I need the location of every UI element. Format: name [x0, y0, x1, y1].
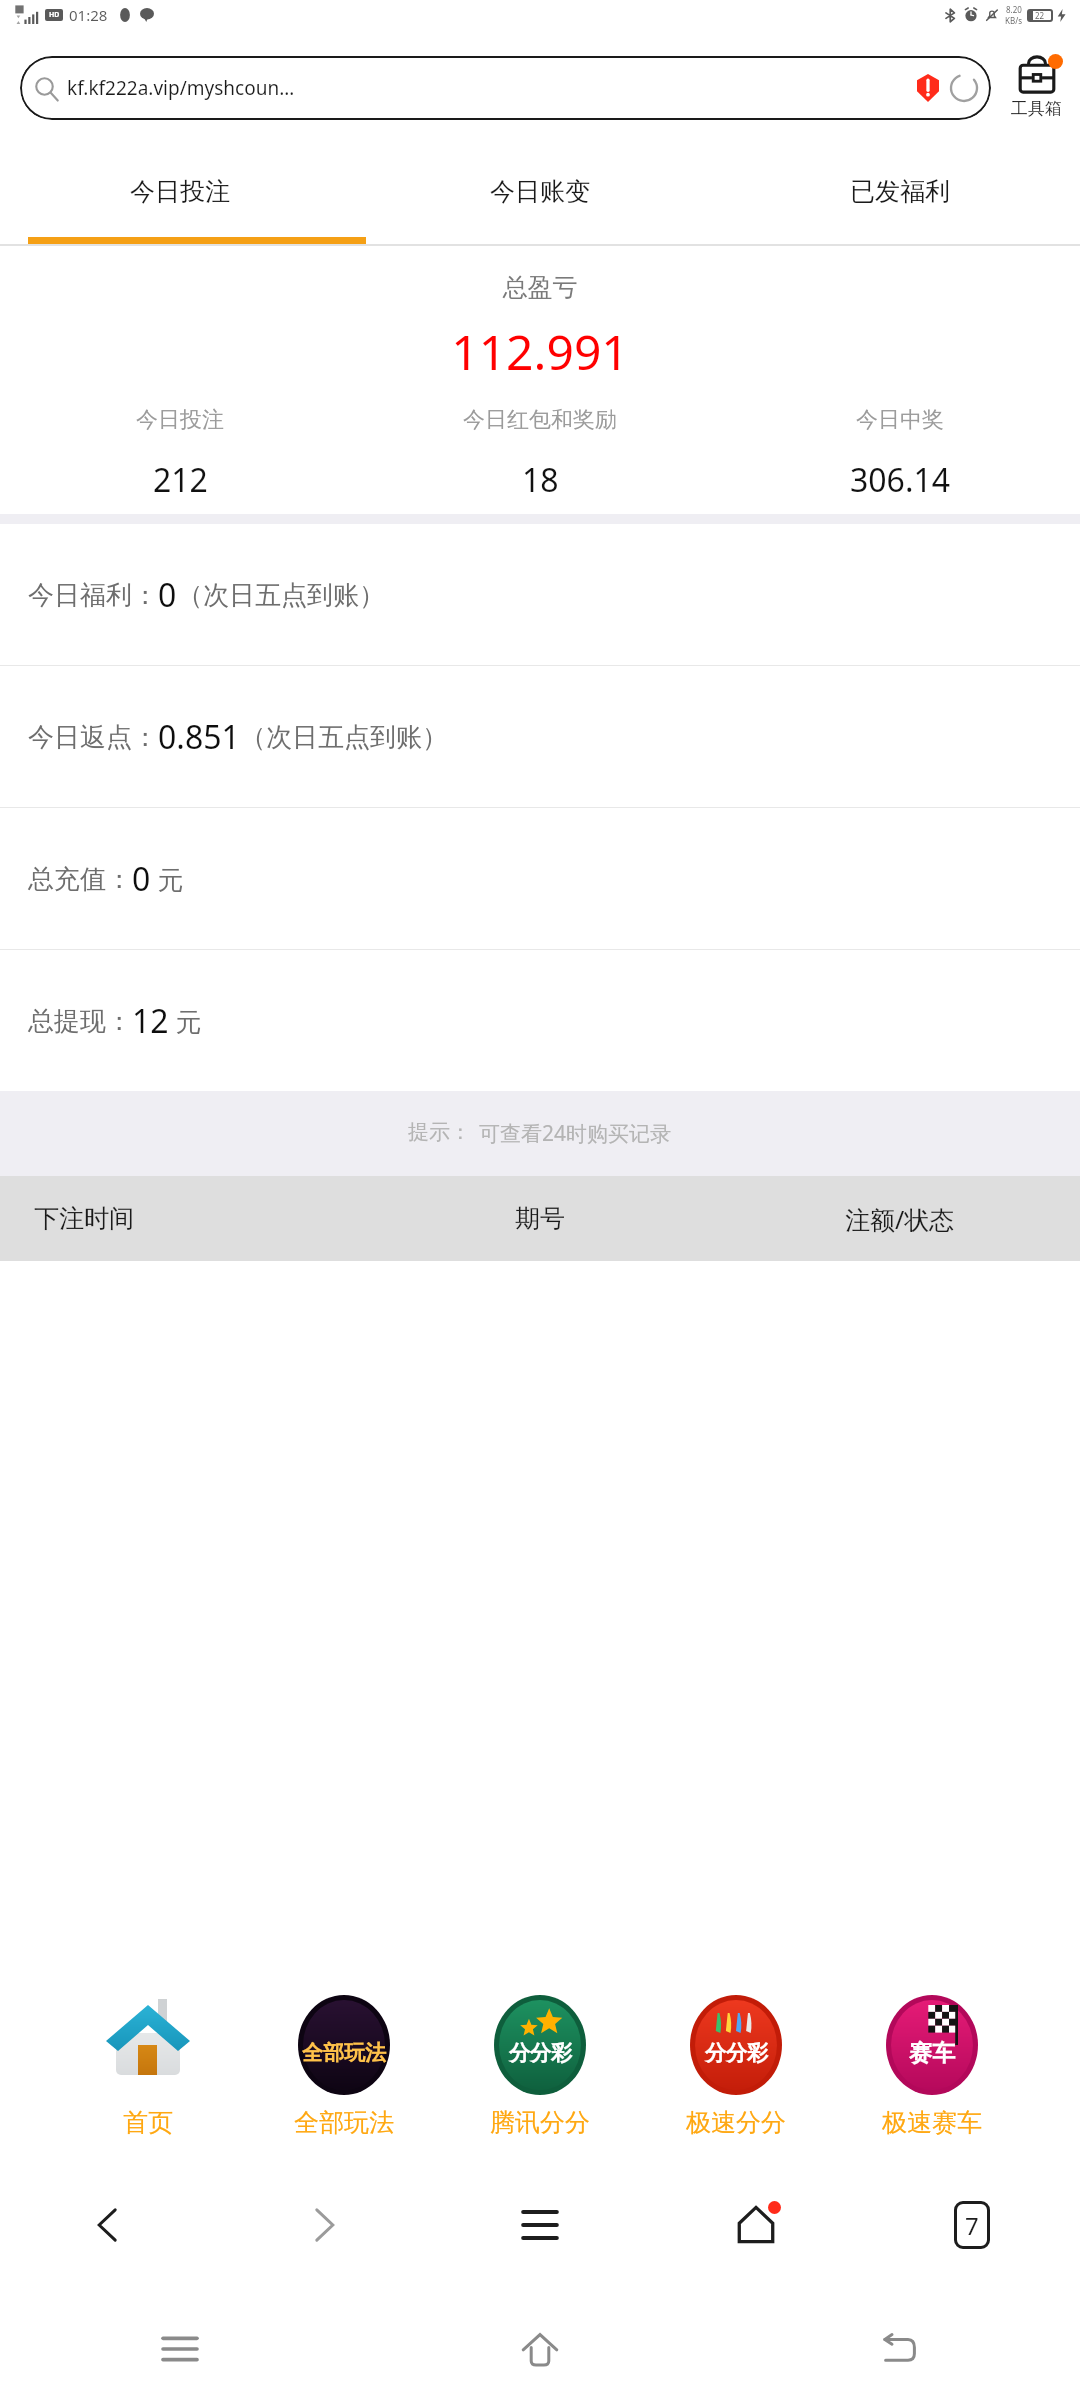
button[interactable]: 分分彩 — [678, 1991, 794, 2138]
staticText: （次日五点到账） — [240, 721, 448, 754]
staticText: 可查看24时购买记录 — [479, 1119, 672, 1148]
staticText: 分分彩 — [509, 2040, 572, 2066]
staticText: kf.kf222a.vip/myshcoun… — [67, 75, 911, 101]
staticText: 22 — [1035, 10, 1045, 21]
other: Reload — [951, 75, 977, 101]
button[interactable]: 今日福利： — [0, 524, 1080, 665]
staticText: 首页 — [123, 2107, 173, 2138]
button[interactable]: 首页 — [90, 1991, 206, 2138]
staticText: 极速赛车 — [882, 2107, 982, 2138]
staticText: 提示： — [408, 1119, 471, 1145]
staticText: 0 — [158, 573, 177, 617]
staticText: 306.14 — [850, 458, 951, 502]
staticText: 112.991 — [0, 319, 1080, 384]
staticText: 已发福利 — [850, 176, 950, 207]
staticText: 今日红包和奖励 — [463, 406, 617, 434]
button[interactable]: 今日返点： — [0, 666, 1080, 807]
other: Security warning — [917, 74, 939, 102]
staticText: 赛车 — [909, 2039, 955, 2068]
staticText: 212 — [153, 458, 208, 502]
staticText: 注额/状态 — [845, 1202, 955, 1236]
button[interactable]: Forward — [216, 2160, 432, 2290]
button[interactable]: 赛车 — [874, 1991, 990, 2138]
staticText: 全部玩法 — [294, 2107, 394, 2138]
staticText: 今日中奖 — [856, 406, 944, 434]
staticText: 18 — [522, 458, 559, 502]
button[interactable]: 今日账变 — [360, 145, 720, 237]
button[interactable]: 工具箱 — [1005, 56, 1068, 119]
button[interactable]: 今日投注 — [0, 145, 360, 237]
button[interactable]: 今日中奖 — [720, 406, 1080, 502]
staticText: 工具箱 — [1011, 98, 1062, 119]
staticText: 0 — [132, 857, 151, 901]
staticText: 总提现： — [28, 1005, 132, 1038]
staticText: 今日返点： — [28, 721, 158, 754]
staticText: 12 — [132, 999, 169, 1043]
staticText: 元 — [151, 861, 184, 897]
staticText: 全部玩法 — [302, 2040, 386, 2066]
staticText: 01:28 — [69, 5, 108, 25]
staticText: 期号 — [515, 1203, 565, 1234]
button[interactable]: Back — [720, 2290, 1080, 2408]
button[interactable]: Home — [648, 2160, 864, 2290]
staticText: 元 — [169, 1003, 202, 1039]
staticText: 下注时间 — [34, 1203, 134, 1234]
staticText: 今日福利： — [28, 579, 158, 612]
button[interactable]: Menu — [432, 2160, 648, 2290]
staticText: 今日投注 — [136, 406, 224, 434]
button[interactable]: 分分彩 — [482, 1991, 598, 2138]
staticText: 腾讯分分 — [490, 2107, 590, 2138]
staticText: 7 — [965, 2209, 979, 2242]
button[interactable]: kf.kf222a.vip/myshcoun… — [20, 56, 991, 120]
staticText: 8.20 — [1006, 4, 1022, 15]
staticText: 今日投注 — [130, 176, 230, 207]
button[interactable]: 今日红包和奖励 — [360, 406, 720, 502]
button[interactable]: 已发福利 — [720, 145, 1080, 237]
staticText: 总盈亏 — [0, 272, 1080, 303]
staticText: KB/s — [1005, 15, 1022, 26]
staticText: （次日五点到账） — [177, 579, 385, 612]
staticText: 总充值： — [28, 863, 132, 896]
button[interactable]: Recents — [0, 2290, 360, 2408]
button[interactable]: 今日投注 — [0, 406, 360, 502]
button[interactable]: 总提现： — [0, 950, 1080, 1091]
button[interactable]: Tabs — [864, 2160, 1080, 2290]
staticText: 0.851 — [158, 715, 240, 759]
staticText: HD — [49, 10, 60, 20]
staticText: 分分彩 — [705, 2040, 768, 2066]
staticText: 极速分分 — [686, 2107, 786, 2138]
staticText: 今日账变 — [490, 176, 590, 207]
button[interactable]: 全部玩法 — [286, 1991, 402, 2138]
button[interactable]: Home — [360, 2290, 720, 2408]
button[interactable]: Back — [0, 2160, 216, 2290]
button[interactable]: 总充值： — [0, 808, 1080, 949]
